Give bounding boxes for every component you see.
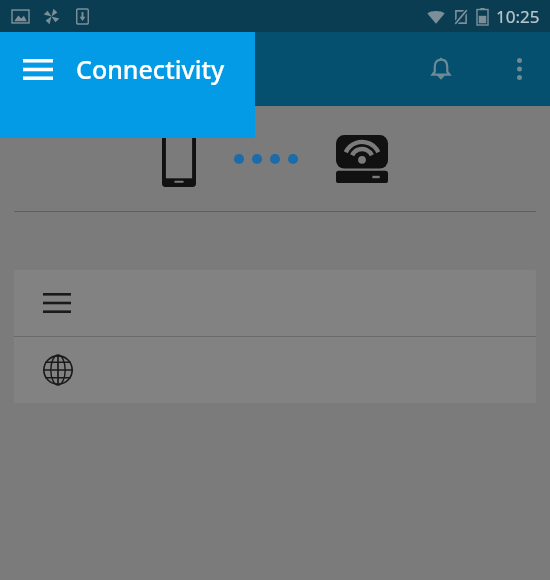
staticText: Connectivity [76,52,225,86]
staticText: 10:25 [496,5,540,28]
button[interactable]: Network [14,337,536,403]
button[interactable]: Connection list [14,270,536,336]
button[interactable]: Open navigation menu [10,41,66,97]
button[interactable]: Notifications [418,46,464,92]
button[interactable]: More options [496,46,542,92]
